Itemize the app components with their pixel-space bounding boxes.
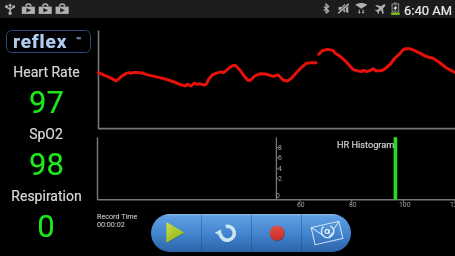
staticText: 8	[278, 144, 282, 152]
staticText: Heart Rate	[13, 64, 80, 80]
staticText: SpO2	[29, 126, 63, 142]
button[interactable]: Refresh	[202, 214, 251, 252]
staticText: 6	[278, 154, 282, 162]
staticText: reflex	[13, 30, 68, 52]
button[interactable]: Play	[151, 214, 201, 252]
staticText: 4	[278, 165, 282, 173]
staticText: 80	[349, 201, 357, 209]
staticText: ™	[76, 36, 82, 45]
staticText: 2	[278, 175, 282, 183]
staticText: 60	[297, 201, 305, 209]
staticText: 12	[450, 201, 455, 209]
staticText: 97	[29, 84, 64, 120]
button[interactable]: Record	[252, 214, 301, 252]
button[interactable]: Email	[302, 214, 351, 252]
staticText: 00:00:02	[97, 220, 125, 228]
staticText: 0	[276, 192, 280, 200]
staticText: HR Histogram	[337, 139, 395, 150]
button[interactable]: reflex	[6, 30, 91, 53]
staticText: 6:40 AM	[404, 3, 453, 18]
staticText: Respiration	[11, 188, 82, 204]
staticText: 0	[37, 208, 55, 244]
staticText: Record Time	[97, 212, 138, 220]
staticText: 100	[399, 201, 411, 209]
staticText: 98	[29, 146, 64, 182]
